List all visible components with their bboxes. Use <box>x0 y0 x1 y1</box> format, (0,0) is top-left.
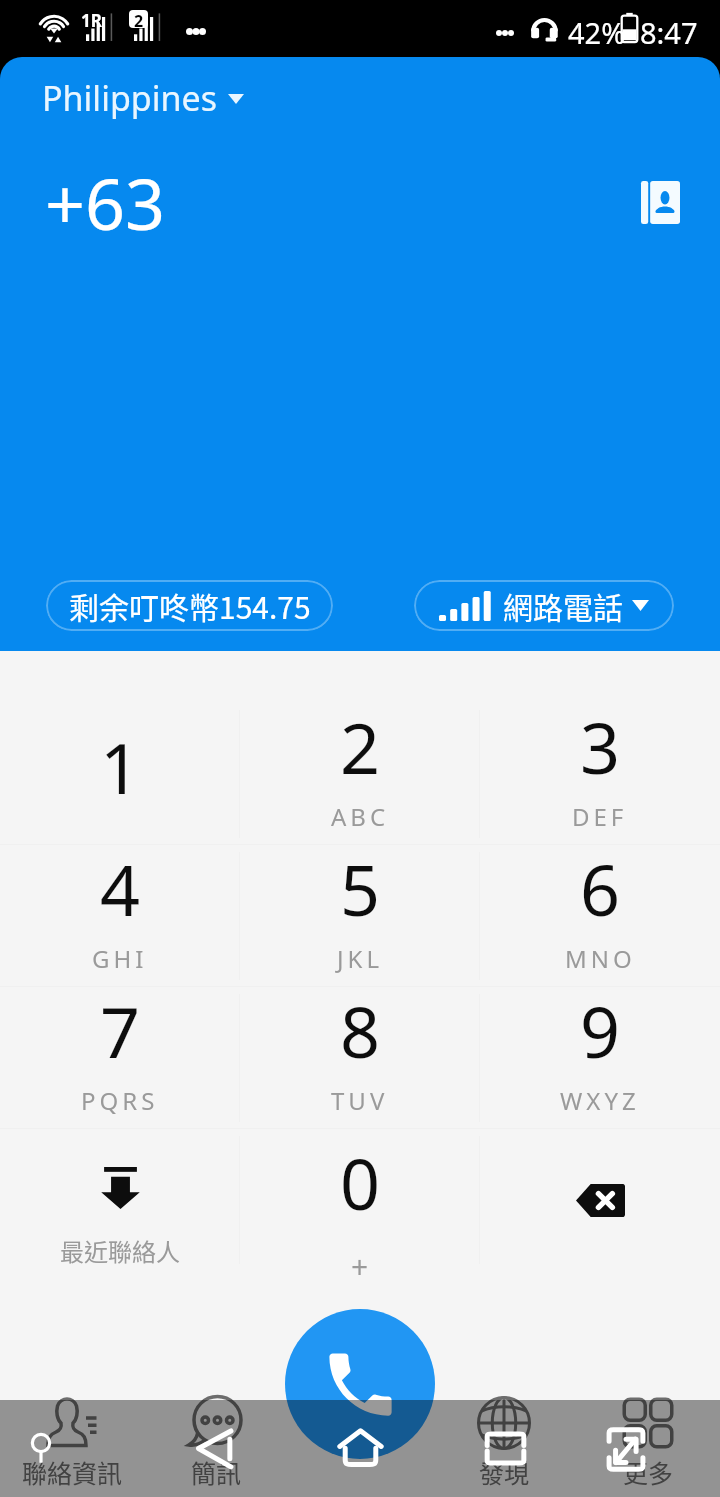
button[interactable]: Recent contacts <box>0 1129 240 1271</box>
staticText: 1R <box>81 9 102 32</box>
staticText: 2 <box>340 699 381 794</box>
staticText: Philippines <box>42 75 217 121</box>
staticText: 發現 <box>479 1454 530 1490</box>
staticText: ABC <box>331 800 390 833</box>
staticText: 5 <box>340 841 381 936</box>
staticText: 簡訊 <box>191 1454 242 1490</box>
staticText: DEF <box>572 800 628 833</box>
button[interactable]: Expand <box>608 1429 644 1470</box>
staticText: TUV <box>331 1084 389 1117</box>
staticText: 網路電話 <box>503 584 623 627</box>
button[interactable]: 1 <box>0 703 240 845</box>
button[interactable]: 5 <box>240 845 480 987</box>
button[interactable]: 9 <box>480 987 720 1129</box>
button[interactable]: 簡訊 <box>144 1390 288 1492</box>
staticText: +63 <box>45 155 166 250</box>
staticText: 6 <box>580 841 621 936</box>
button[interactable]: 7 <box>0 987 240 1129</box>
button[interactable]: Assistant <box>29 1433 53 1464</box>
staticText: 7 <box>100 983 141 1078</box>
button[interactable]: Contacts <box>630 172 690 232</box>
staticText: 1 <box>100 719 141 814</box>
staticText: 聯絡資訊 <box>22 1454 123 1490</box>
staticText: 4 <box>100 841 141 936</box>
button[interactable]: 0 <box>240 1129 480 1271</box>
staticText: 剩余叮咚幣154.75 <box>69 584 311 627</box>
button[interactable]: Back <box>196 1429 232 1468</box>
button[interactable]: 聯絡資訊 <box>0 1390 144 1492</box>
staticText: 8:47 <box>640 13 698 52</box>
staticText: 0 <box>340 1135 381 1230</box>
staticText: JKL <box>337 942 383 975</box>
staticText: GHI <box>92 942 148 975</box>
button[interactable]: 8 <box>240 987 480 1129</box>
button[interactable]: 更多 <box>576 1390 720 1492</box>
button[interactable]: Home <box>338 1429 383 1466</box>
staticText: 3 <box>580 699 621 794</box>
staticText: WXYZ <box>560 1084 640 1117</box>
button[interactable]: 剩余叮咚幣154.75 <box>46 580 333 631</box>
staticText: 更多 <box>623 1454 674 1490</box>
button[interactable]: Call <box>285 1309 435 1459</box>
button[interactable]: Philippines <box>42 75 244 121</box>
button[interactable]: 2 <box>240 703 480 845</box>
staticText: 最近聯絡人 <box>60 1233 180 1268</box>
button[interactable]: Backspace <box>480 1129 720 1271</box>
staticText: + <box>351 1246 369 1277</box>
button[interactable]: 網路電話 <box>414 580 674 631</box>
button[interactable]: 3 <box>480 703 720 845</box>
staticText: PQRS <box>81 1084 159 1117</box>
button[interactable]: 6 <box>480 845 720 987</box>
staticText: 8 <box>340 983 381 1078</box>
staticText: 9 <box>580 983 621 1078</box>
button[interactable]: 4 <box>0 845 240 987</box>
button[interactable]: 發現 <box>432 1390 576 1492</box>
staticText: 42% <box>568 13 626 52</box>
button[interactable]: Recents <box>486 1433 525 1464</box>
staticText: MNO <box>565 942 636 975</box>
staticText: 2 <box>134 10 144 28</box>
